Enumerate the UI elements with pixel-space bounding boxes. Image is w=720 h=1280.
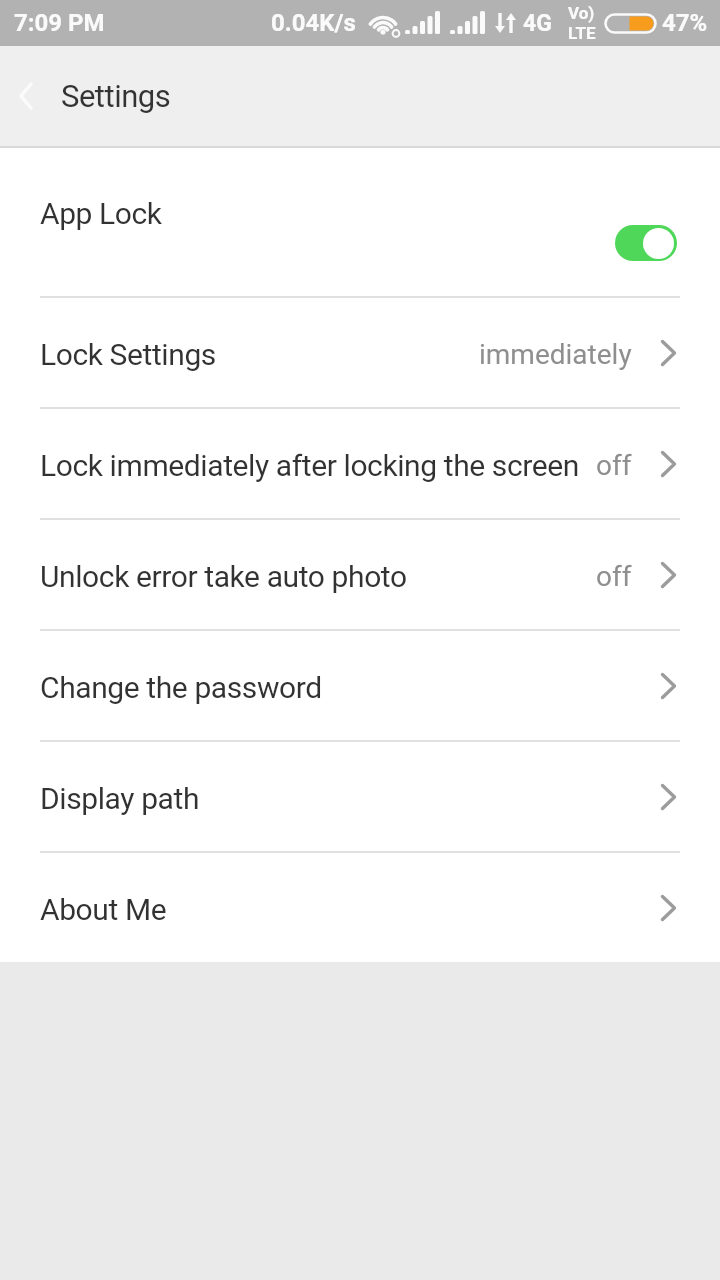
button[interactable]: Change the password [0, 631, 720, 740]
button[interactable]: Lock immediately after locking the scree… [0, 409, 720, 518]
staticText: Change the password [40, 670, 322, 705]
staticText: immediately [479, 338, 632, 371]
staticText: off [596, 449, 632, 482]
staticText: off [596, 560, 632, 593]
staticText: Display path [40, 781, 200, 816]
staticText: Unlock error take auto photo [40, 559, 407, 594]
staticText: Vo) [568, 3, 595, 23]
button[interactable]: Lock Settings [0, 298, 720, 407]
staticText: Lock immediately after locking the scree… [40, 448, 579, 483]
staticText: 4G [523, 10, 552, 37]
staticText: About Me [40, 892, 167, 927]
button[interactable]: Display path [0, 742, 720, 851]
staticText: 47% [662, 9, 708, 37]
staticText: Settings [61, 78, 171, 114]
button[interactable]: App Lock [0, 148, 720, 296]
button[interactable]: Unlock error take auto photo [0, 520, 720, 629]
staticText: LTE [568, 23, 596, 43]
staticText: Lock Settings [40, 337, 216, 372]
button[interactable]: About Me [0, 853, 720, 962]
button[interactable] [615, 225, 677, 261]
staticText: 0.04K/s [271, 9, 356, 37]
button[interactable] [18, 82, 34, 110]
staticText: App Lock [40, 196, 162, 231]
staticText: 7:09 PM [14, 9, 105, 37]
